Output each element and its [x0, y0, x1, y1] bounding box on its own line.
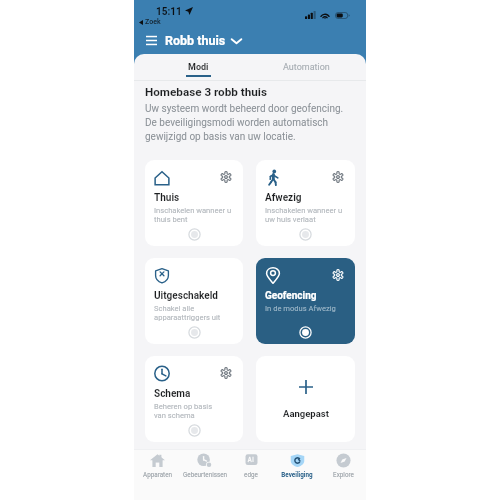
staticText: Automation [283, 62, 330, 73]
staticText: Schakel alle apparaattriggers uit [154, 304, 221, 322]
button[interactable]: Menu [146, 35, 157, 46]
staticText: Apparaten [143, 471, 172, 478]
staticText: Gebeurtenissen [183, 471, 227, 478]
button[interactable]: Apparaten [134, 450, 181, 500]
button[interactable]: Explore [320, 450, 366, 500]
staticText: Uitgeschakeld [154, 290, 218, 302]
staticText: 15:11 [156, 6, 182, 18]
staticText: Homebase 3 robb thuis [145, 85, 267, 99]
button[interactable]: Beveiliging [274, 450, 320, 500]
staticText: Beheren op basis van schema [154, 402, 213, 420]
button[interactable]: Automation [252, 54, 360, 81]
button[interactable]: Settings [332, 269, 344, 281]
button[interactable]: Settings [145, 160, 243, 246]
button[interactable]: Select Uitgeschakeld [188, 326, 201, 339]
button[interactable]: Gebeurtenissen [181, 450, 228, 500]
button[interactable]: Modi [144, 54, 252, 81]
button[interactable]: Select Thuis [188, 228, 201, 241]
staticText: Inschakelen wanneer u thuis bent [154, 206, 232, 224]
staticText: Zoek [145, 18, 161, 26]
button[interactable]: Select Afwezig [299, 228, 312, 241]
button[interactable]: Settings [256, 160, 355, 246]
staticText: edge [244, 471, 258, 478]
staticText: Inschakelen wanneer u uw huis verlaat [265, 206, 343, 224]
button[interactable]: Zoek [139, 18, 161, 26]
button[interactable]: Settings [220, 171, 232, 183]
staticText: Schema [154, 388, 191, 400]
button[interactable]: Settings [145, 356, 243, 442]
button[interactable]: Select Geofencing [299, 326, 312, 339]
button[interactable]: Settings [332, 171, 344, 183]
staticText: Afwezig [265, 192, 302, 204]
button[interactable]: Settings [220, 367, 232, 379]
staticText: Modi [188, 62, 209, 73]
button[interactable]: Settings [256, 258, 355, 344]
button[interactable]: edge [228, 450, 274, 500]
staticText: Robb thuis [165, 33, 226, 48]
staticText: Thuis [154, 192, 180, 204]
staticText: Explore [333, 471, 354, 478]
staticText: Uw systeem wordt beheerd door geofencing… [145, 103, 344, 143]
button[interactable]: Uitgeschakeld [145, 258, 243, 344]
staticText: Geofencing [265, 290, 317, 302]
button[interactable]: Select Schema [188, 424, 201, 437]
staticText: In de modus Afwezig [265, 304, 336, 313]
staticText: Beveiliging [281, 471, 313, 478]
button[interactable]: Menu [134, 27, 366, 54]
button[interactable]: Aangepast [256, 356, 355, 442]
staticText: Aangepast [283, 408, 329, 419]
